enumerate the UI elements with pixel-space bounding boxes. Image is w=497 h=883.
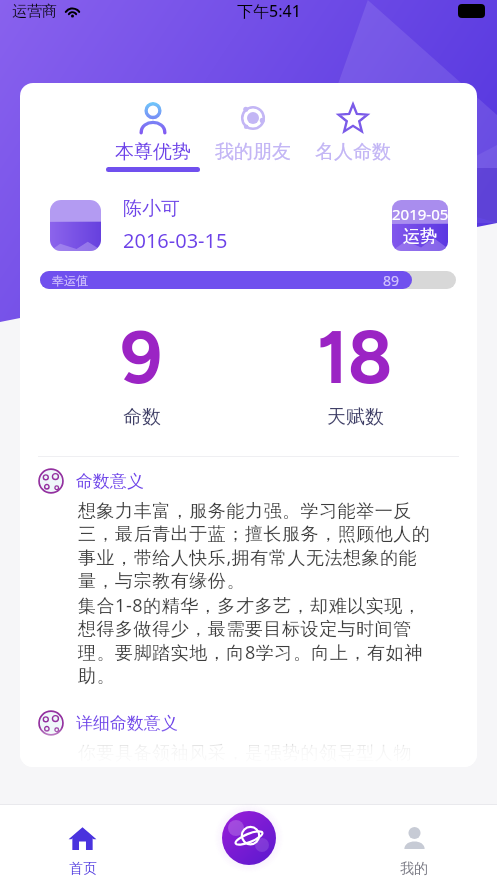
button[interactable]: 2019-05 [392, 200, 448, 251]
staticText: 天赋数 [327, 405, 384, 429]
staticText: 命数意义 [76, 471, 144, 492]
button[interactable]: 本尊优势 [103, 101, 203, 172]
staticText: 详细命数意义 [76, 713, 178, 734]
staticText: 陈小可 [123, 197, 180, 221]
staticText: 运营商 [12, 2, 57, 21]
staticText: 你要具备领袖风采，是强势的领导型人物 [78, 742, 452, 765]
staticText: 下午5:41 [237, 0, 301, 22]
staticText: 首页 [69, 860, 97, 878]
staticText: 我的朋友 [215, 140, 291, 164]
staticText: 集合1-8的精华，多才多艺，却难以实现， 想得多做得少，最需要目标设定与时间管 … [78, 593, 452, 688]
staticText: 幸运值 [52, 273, 88, 288]
button[interactable]: 我的朋友 [203, 101, 303, 167]
button[interactable]: 我的 [331, 826, 497, 878]
staticText: 89 [383, 271, 400, 289]
button[interactable]: 名人命数 [303, 101, 403, 167]
staticText: 命数 [123, 405, 161, 429]
staticText: 18 [317, 314, 393, 402]
staticText: 运势 [403, 226, 437, 247]
staticText: 我的 [400, 860, 428, 878]
staticText: 2016-03-15 [123, 227, 228, 254]
staticText: 想象力丰富，服务能力强。学习能举一反 三，最后青出于蓝；擅长服务，照顾他人的 事… [78, 500, 452, 593]
staticText: 9 [120, 314, 163, 402]
staticText: 名人命数 [315, 140, 391, 164]
button[interactable]: 首页 [0, 826, 165, 878]
staticText: 本尊优势 [115, 140, 191, 164]
button[interactable]: Explore [214, 803, 284, 873]
staticText: 2019-05 [392, 204, 448, 224]
